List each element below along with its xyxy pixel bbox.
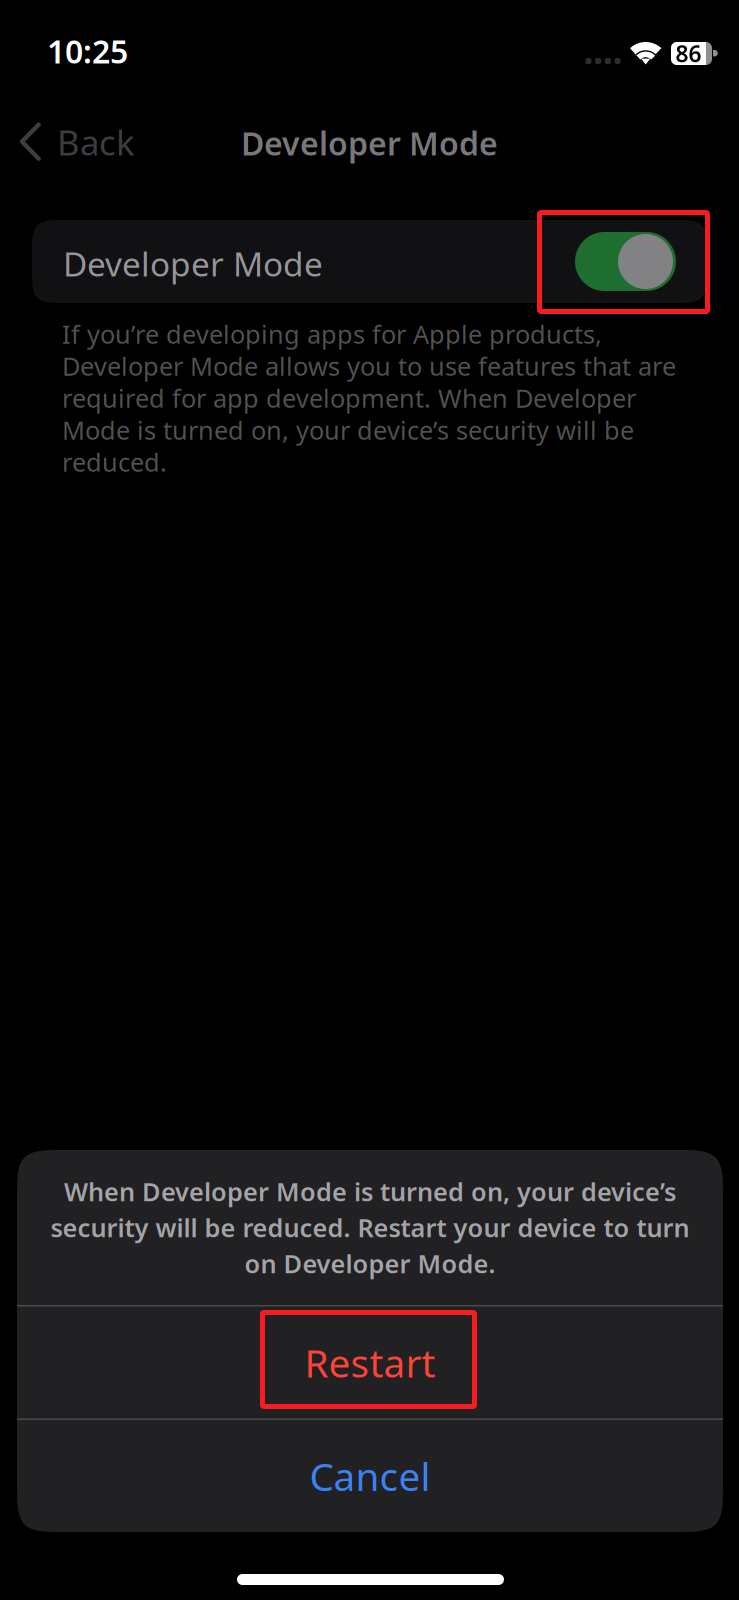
- staticText: security will be reduced. Restart your d…: [50, 1211, 689, 1244]
- staticText: required for app development. When Devel…: [62, 381, 636, 415]
- button[interactable]: Developer Mode, on: [544, 220, 707, 303]
- button[interactable]: Cancel: [17, 1420, 723, 1532]
- staticText: If you’re developing apps for Apple prod…: [62, 317, 602, 351]
- button[interactable]: Back: [0, 110, 189, 172]
- staticText: Back: [57, 119, 135, 165]
- button[interactable]: Restart: [17, 1306, 723, 1418]
- staticText: When Developer Mode is turned on, your d…: [64, 1175, 676, 1208]
- staticText: Developer Mode: [241, 122, 498, 164]
- staticText: Restart: [304, 1337, 435, 1388]
- staticText: reduced.: [62, 445, 167, 479]
- staticText: 10:25: [47, 30, 128, 72]
- staticText: Developer Mode: [63, 241, 323, 286]
- staticText: Developer Mode allows you to use feature…: [62, 349, 676, 383]
- staticText: on Developer Mode.: [244, 1247, 495, 1280]
- staticText: Cancel: [309, 1450, 430, 1502]
- staticText: Mode is turned on, your device’s securit…: [62, 413, 634, 447]
- staticText: 86: [675, 38, 701, 68]
